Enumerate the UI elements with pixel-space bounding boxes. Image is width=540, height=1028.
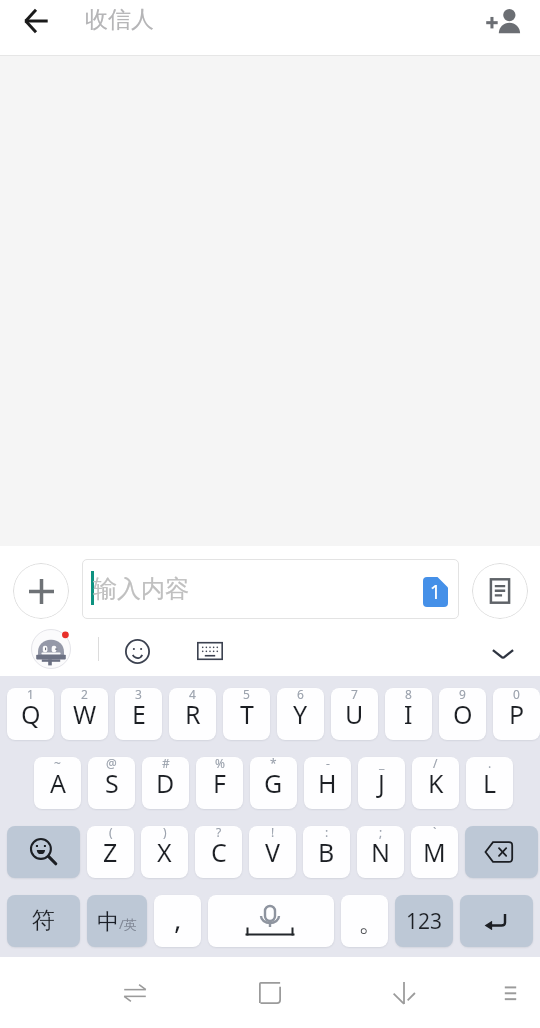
button[interactable]: Assistant bbox=[27, 625, 75, 673]
staticText: 9 bbox=[459, 688, 466, 702]
staticText: 输入内容 bbox=[93, 574, 189, 604]
button[interactable]: ; bbox=[357, 826, 404, 878]
button[interactable]: ( bbox=[87, 826, 134, 878]
staticText: % bbox=[215, 757, 225, 771]
staticText: 符 bbox=[32, 906, 55, 935]
staticText: L bbox=[483, 766, 497, 800]
staticText: _ bbox=[379, 757, 385, 771]
button[interactable]: 2 bbox=[61, 688, 108, 740]
staticText: : bbox=[325, 826, 329, 840]
staticText: ; bbox=[379, 826, 383, 840]
button[interactable]: Add contact bbox=[482, 2, 522, 42]
button[interactable]: 4 bbox=[169, 688, 216, 740]
button[interactable]: Add attachment bbox=[13, 563, 69, 619]
button[interactable]: ! bbox=[249, 826, 296, 878]
staticText: ) bbox=[163, 826, 167, 840]
staticText: B bbox=[318, 835, 335, 869]
button[interactable]: - bbox=[304, 757, 351, 809]
button[interactable]: @ bbox=[88, 757, 135, 809]
button[interactable]: Back bbox=[12, 0, 60, 41]
button[interactable]: 输入内容 bbox=[82, 559, 459, 619]
staticText: 7 bbox=[351, 688, 358, 702]
staticText: ! bbox=[271, 826, 275, 840]
button[interactable]: 9 bbox=[439, 688, 486, 740]
staticText: 1 bbox=[27, 688, 34, 702]
staticText: 123 bbox=[406, 907, 443, 936]
button[interactable]: 7 bbox=[331, 688, 378, 740]
staticText: ( bbox=[109, 826, 113, 840]
button[interactable]: : bbox=[303, 826, 350, 878]
staticText: 。 bbox=[358, 906, 384, 939]
staticText: A bbox=[50, 766, 66, 800]
staticText: / bbox=[433, 757, 438, 771]
button[interactable]: ? bbox=[195, 826, 242, 878]
button[interactable]: Hide keyboard bbox=[383, 971, 427, 1015]
staticText: /英 bbox=[119, 915, 137, 933]
staticText: 8 bbox=[405, 688, 412, 702]
button[interactable]: Space bbox=[208, 895, 334, 947]
staticText: 1 bbox=[430, 579, 441, 605]
staticText: 0 bbox=[513, 688, 520, 702]
button[interactable]: % bbox=[196, 757, 243, 809]
staticText: ~ bbox=[54, 757, 61, 771]
staticText: E bbox=[132, 697, 146, 731]
button[interactable]: / bbox=[412, 757, 459, 809]
button[interactable]: 8 bbox=[385, 688, 432, 740]
staticText: J bbox=[378, 766, 385, 800]
staticText: D bbox=[156, 766, 175, 800]
button[interactable]: Recents bbox=[248, 971, 292, 1015]
staticText: ? bbox=[216, 826, 222, 840]
button[interactable]: , bbox=[154, 895, 201, 947]
staticText: - bbox=[326, 757, 330, 771]
staticText: ` bbox=[433, 826, 437, 840]
button[interactable]: 符 bbox=[7, 895, 80, 947]
staticText: T bbox=[240, 697, 254, 731]
button[interactable]: ~ bbox=[34, 757, 81, 809]
staticText: , bbox=[174, 899, 182, 937]
button[interactable]: Emoji bbox=[117, 631, 157, 671]
button[interactable]: Keyboard bbox=[190, 631, 230, 671]
staticText: N bbox=[371, 835, 391, 869]
button[interactable]: 123 bbox=[395, 895, 453, 947]
staticText: F bbox=[213, 766, 226, 800]
button[interactable]: . bbox=[466, 757, 513, 809]
staticText: 5 bbox=[243, 688, 250, 702]
staticText: 中 bbox=[97, 908, 119, 936]
button[interactable]: Backspace bbox=[465, 826, 538, 878]
staticText: W bbox=[73, 697, 97, 731]
staticText: U bbox=[345, 697, 364, 731]
staticText: C bbox=[211, 835, 227, 869]
button[interactable]: Switch input bbox=[113, 971, 157, 1015]
button[interactable]: Emoji search bbox=[7, 826, 80, 878]
button[interactable]: 5 bbox=[223, 688, 270, 740]
staticText: 2 bbox=[81, 688, 88, 702]
staticText: M bbox=[423, 835, 446, 869]
button[interactable]: ` bbox=[411, 826, 458, 878]
button[interactable]: _ bbox=[358, 757, 405, 809]
button[interactable]: 1 bbox=[7, 688, 54, 740]
button[interactable]: 3 bbox=[115, 688, 162, 740]
staticText: I bbox=[404, 697, 413, 731]
button[interactable]: ) bbox=[141, 826, 188, 878]
button[interactable]: 6 bbox=[277, 688, 324, 740]
staticText: P bbox=[509, 697, 525, 731]
staticText: K bbox=[428, 766, 444, 800]
staticText: S bbox=[105, 766, 119, 800]
button[interactable]: Menu bbox=[490, 973, 530, 1013]
button[interactable]: 中 bbox=[87, 895, 147, 947]
button[interactable]: Templates bbox=[472, 563, 528, 619]
staticText: . bbox=[488, 757, 492, 771]
staticText: 4 bbox=[189, 688, 196, 702]
button[interactable]: Enter bbox=[460, 895, 533, 947]
staticText: Z bbox=[103, 835, 118, 869]
button[interactable]: 0 bbox=[493, 688, 540, 740]
staticText: R bbox=[185, 697, 201, 731]
button[interactable]: # bbox=[142, 757, 189, 809]
button[interactable]: 。 bbox=[341, 895, 388, 947]
staticText: @ bbox=[106, 757, 117, 771]
button[interactable]: * bbox=[250, 757, 297, 809]
staticText: Y bbox=[293, 697, 308, 731]
staticText: O bbox=[453, 697, 473, 731]
button[interactable]: Collapse bbox=[481, 631, 525, 675]
staticText: # bbox=[162, 757, 170, 771]
